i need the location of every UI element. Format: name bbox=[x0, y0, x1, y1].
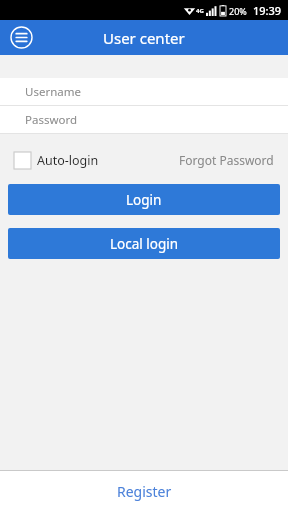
staticText: Local login bbox=[110, 235, 179, 253]
staticText: 4G bbox=[196, 7, 204, 15]
button[interactable]: Login bbox=[8, 184, 280, 215]
button[interactable]: Local login bbox=[8, 228, 280, 259]
button[interactable]: Password bbox=[0, 106, 288, 133]
button[interactable]: Auto-login bbox=[14, 152, 99, 169]
staticText: User center bbox=[103, 28, 185, 48]
staticText: Forgot Password bbox=[179, 152, 274, 168]
staticText: 19:39 bbox=[253, 3, 282, 18]
staticText: Password bbox=[25, 112, 78, 128]
staticText: 20% bbox=[229, 5, 247, 17]
staticText: Username bbox=[25, 84, 81, 100]
staticText: Login bbox=[126, 191, 162, 209]
staticText: Register bbox=[117, 482, 172, 501]
button[interactable]: Register bbox=[0, 471, 288, 512]
button[interactable]: Username bbox=[0, 78, 288, 105]
staticText: Auto-login bbox=[37, 152, 99, 169]
button[interactable]: Menu bbox=[8, 24, 35, 51]
button[interactable]: Forgot Password bbox=[179, 152, 274, 168]
